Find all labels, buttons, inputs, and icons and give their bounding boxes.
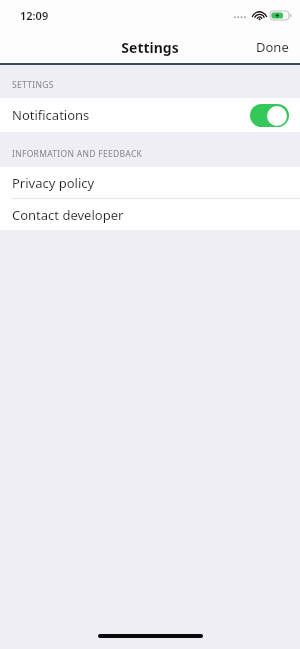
staticText: Privacy policy — [12, 174, 95, 192]
button[interactable]: Done — [253, 34, 292, 60]
button[interactable]: Notifications — [0, 98, 300, 132]
staticText: 12:09 — [20, 8, 49, 23]
staticText: INFORMATION AND FEEDBACK — [12, 148, 143, 160]
staticText: Notifications — [12, 106, 250, 124]
staticText: SETTINGS — [12, 79, 54, 91]
button[interactable]: Notifications toggle — [250, 104, 289, 127]
button[interactable]: Contact developer — [0, 199, 300, 230]
staticText: Contact developer — [12, 206, 124, 224]
staticText: Settings — [121, 38, 179, 57]
button[interactable]: Privacy policy — [0, 167, 300, 198]
staticText: Done — [256, 38, 289, 56]
